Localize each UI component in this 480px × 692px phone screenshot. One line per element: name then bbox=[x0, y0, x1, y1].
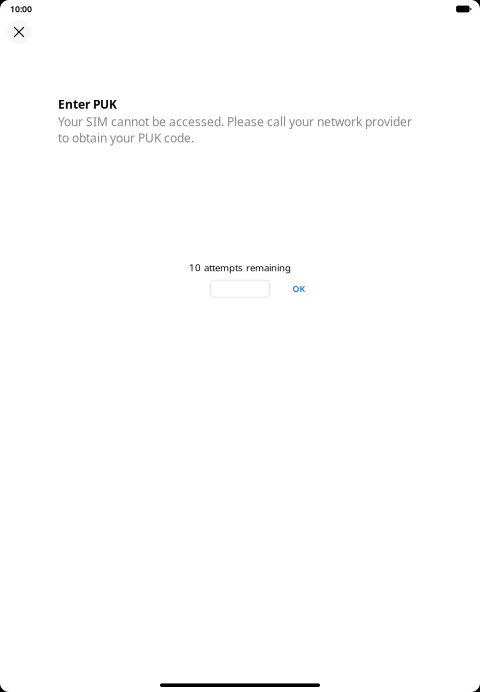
button[interactable]: Close bbox=[7, 20, 31, 44]
staticText: 10:00 bbox=[10, 3, 32, 15]
button[interactable]: OK bbox=[269, 280, 328, 297]
staticText: OK bbox=[292, 283, 305, 295]
staticText: Your SIM cannot be accessed. Please call… bbox=[58, 113, 412, 146]
staticText: Enter PUK bbox=[58, 96, 117, 112]
textField[interactable] bbox=[210, 282, 269, 295]
staticText: 10 attempts remaining bbox=[189, 261, 291, 274]
